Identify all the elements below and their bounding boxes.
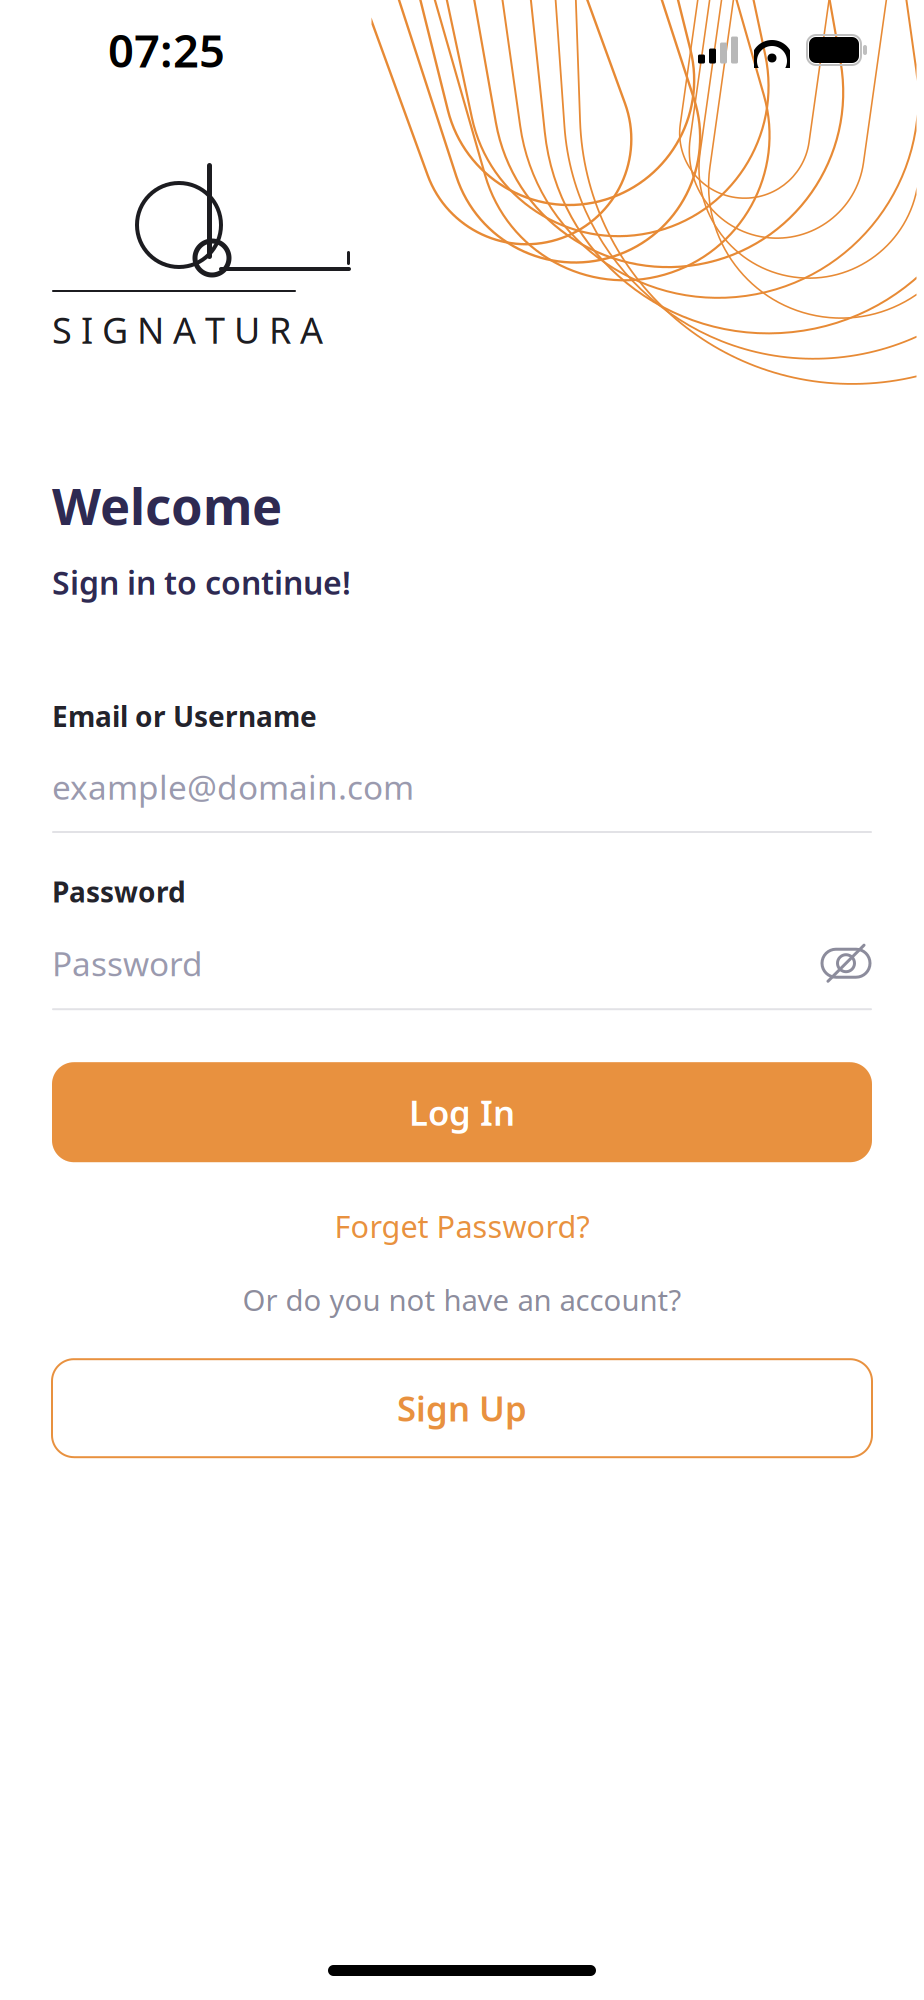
staticText: Sign in to continue! [52, 561, 351, 604]
staticText: example@domain.com [52, 765, 414, 809]
staticText: Password [52, 873, 186, 910]
staticText: Email or Username [52, 698, 317, 735]
staticText: Forget Password? [334, 1206, 589, 1247]
staticText: Welcome [52, 472, 282, 539]
button[interactable]: Forget Password? [52, 1200, 872, 1252]
button[interactable]: Sign Up [52, 1359, 872, 1457]
staticText: Log In [409, 1089, 515, 1135]
staticText: Or do you not have an account? [242, 1280, 681, 1319]
staticText: 07:25 [108, 20, 225, 80]
staticText: Sign Up [397, 1385, 527, 1431]
staticText: Password [52, 941, 203, 985]
button[interactable]: Show password [820, 940, 872, 986]
staticText: S I G N A T U R A [52, 306, 323, 354]
button[interactable]: Log In [52, 1062, 872, 1162]
